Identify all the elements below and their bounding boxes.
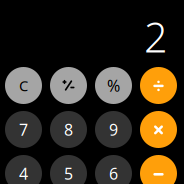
button[interactable]: 7 bbox=[5, 111, 42, 148]
button[interactable]: 6 bbox=[95, 155, 132, 184]
button[interactable]: 5 bbox=[50, 155, 87, 184]
button[interactable]: Plus minus bbox=[50, 67, 87, 104]
button[interactable]: Multiply bbox=[140, 111, 177, 148]
staticText: 4 bbox=[19, 163, 28, 184]
staticText: 7 bbox=[19, 119, 28, 140]
staticText: 5 bbox=[64, 163, 73, 184]
button[interactable]: 4 bbox=[5, 155, 42, 184]
button[interactable]: Divide bbox=[140, 67, 177, 104]
staticText: 9 bbox=[109, 119, 118, 140]
staticText: % bbox=[107, 75, 120, 96]
staticText: C bbox=[19, 76, 28, 95]
staticText: 2 bbox=[144, 9, 168, 64]
staticText: 6 bbox=[109, 163, 118, 184]
staticText: 8 bbox=[64, 119, 73, 140]
button[interactable]: C bbox=[5, 67, 42, 104]
button[interactable]: 9 bbox=[95, 111, 132, 148]
button[interactable]: 8 bbox=[50, 111, 87, 148]
button[interactable]: Minus bbox=[140, 155, 177, 184]
button[interactable]: % bbox=[95, 67, 132, 104]
